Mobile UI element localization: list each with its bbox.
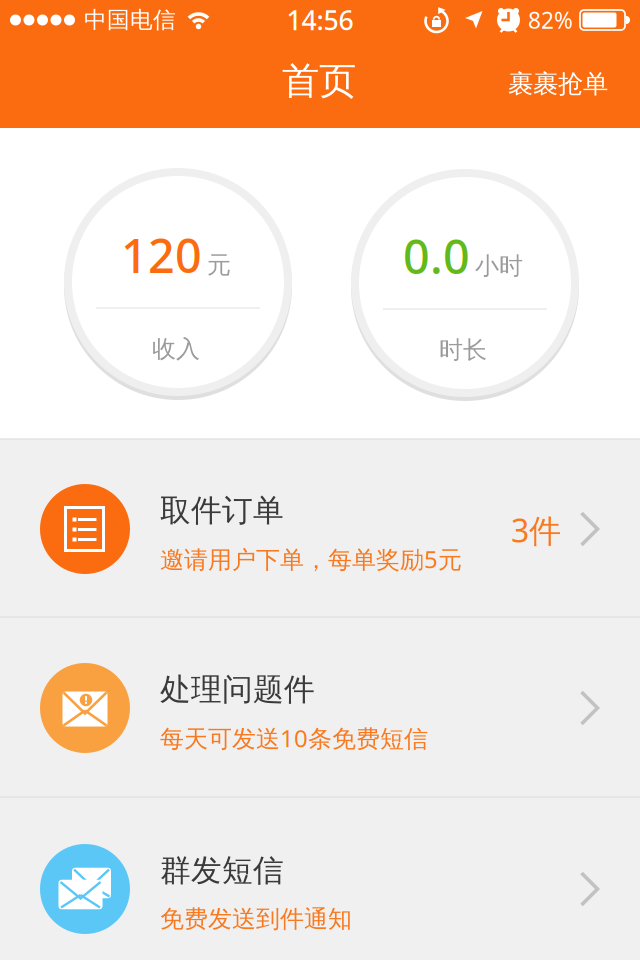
staticText: 120 (121, 224, 202, 286)
button[interactable]: 处理问题件 (0, 617, 640, 796)
button[interactable]: 群发短信 (0, 798, 640, 960)
staticText: 3件 (511, 509, 561, 551)
staticText: 元 (207, 250, 231, 280)
staticText: 每天可发送10条免费短信 (160, 722, 428, 754)
staticText: 裹裹抢单 (508, 68, 608, 99)
staticText: 邀请用户下单，每单奖励5元 (160, 543, 462, 575)
staticText: 中国电信 (84, 6, 176, 34)
staticText: 时长 (439, 335, 487, 365)
staticText: 82% (528, 5, 573, 35)
button[interactable]: 取件订单 (0, 439, 640, 616)
staticText: 14:56 (286, 2, 353, 38)
button[interactable]: 裹裹抢单 (493, 40, 623, 128)
staticText: 处理问题件 (160, 671, 315, 708)
staticText: 首页 (282, 58, 356, 104)
staticText: 免费发送到件通知 (160, 904, 352, 934)
staticText: 群发短信 (160, 852, 284, 889)
staticText: 小时 (475, 251, 523, 281)
staticText: 收入 (152, 334, 200, 364)
staticText: 0.0 (403, 225, 470, 287)
staticText: 取件订单 (160, 492, 284, 529)
